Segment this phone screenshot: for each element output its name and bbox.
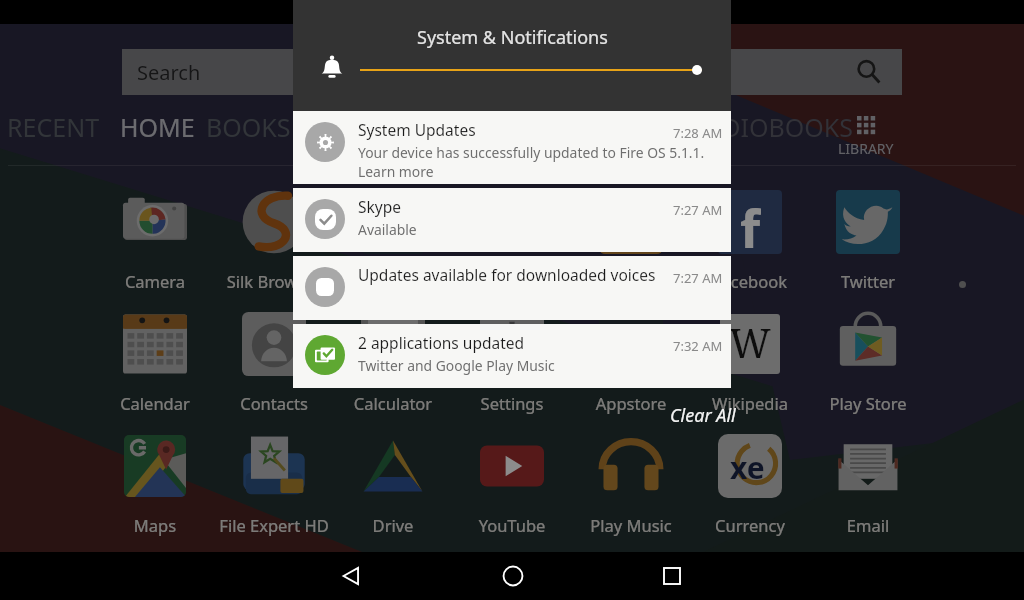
button[interactable]: Email [453,182,571,294]
button[interactable]: Twitter [809,182,927,294]
staticText: 2 applications updated [358,332,525,353]
staticText: f [740,192,761,254]
button[interactable]: System Updates [293,111,731,184]
button[interactable]: YouTube [453,426,571,538]
staticText: xe [730,447,765,488]
button[interactable]: Camera [96,182,214,294]
button[interactable]: Home [493,556,533,596]
staticText: LIBRARY [838,139,894,158]
staticText: Currency [691,514,809,536]
staticText: Play Music [572,514,690,536]
button[interactable]: Clear All [662,398,744,433]
staticText: Your device has successfully updated to … [358,143,705,162]
button[interactable]: Email [809,426,927,538]
staticText: Play Store [809,392,927,414]
button[interactable]: AUDIOBOOKS [688,110,854,144]
staticText: Updates available for downloaded voices [358,264,656,285]
staticText: W [729,315,771,369]
staticText: 7:27 AM [673,269,723,287]
staticText: Twitter and Google Play Music [358,356,555,375]
staticText: 7:28 AM [673,124,723,142]
button[interactable]: HOME [120,110,195,144]
staticText: Calendar [96,392,214,414]
button[interactable]: Settings [453,304,571,416]
staticText: System & Notifications [417,25,608,50]
button[interactable]: Contacts [215,304,333,416]
button[interactable]: Updates available for downloaded voices [293,256,731,320]
button[interactable]: Play Store [809,304,927,416]
staticText: File Expert HD [215,514,333,536]
staticText: Silk Browser [215,270,333,292]
staticText: Clear All [670,403,736,428]
staticText: 7:27 AM [673,201,723,219]
button[interactable]: Volume [360,61,702,79]
staticText: Audible [572,270,690,292]
button[interactable]: Kindle [334,182,452,294]
staticText: Maps [96,514,214,536]
button[interactable]: Back [331,556,371,596]
button[interactable]: Audible [572,182,690,294]
button[interactable]: Maps [96,426,214,538]
button[interactable]: Play Music [572,426,690,538]
button[interactable]: Search [122,49,902,95]
staticText: Settings [453,392,571,414]
button[interactable]: File Expert HD [215,426,333,538]
button[interactable]: f [691,182,809,294]
button[interactable]: Drive [334,426,452,538]
staticText: Learn more [358,162,434,181]
staticText: Appstore [572,392,690,414]
staticText: Drive [334,514,452,536]
staticText: Available [358,220,417,239]
button[interactable]: Appstore [572,304,690,416]
staticText: Contacts [215,392,333,414]
button[interactable]: Recents [652,556,692,596]
staticText: Wikipedia [691,392,809,414]
button[interactable]: 2 applications updated [293,324,731,388]
staticText: YouTube [453,514,571,536]
staticText: Skype [358,196,401,217]
button[interactable]: W [691,304,809,416]
button[interactable]: LIBRARY [823,116,909,158]
button[interactable]: xe [691,426,809,538]
staticText: Facebook [691,270,809,292]
staticText: Kindle [334,270,452,292]
button[interactable]: Calendar [96,304,214,416]
staticText: Email [453,270,571,292]
button[interactable]: Skype [293,188,731,252]
staticText: Email [809,514,927,536]
staticText: Twitter [809,270,927,292]
staticText: Search [137,59,201,86]
staticText: Calculator [334,392,452,414]
staticText: System Updates [358,119,476,140]
button[interactable]: RECENT [7,110,100,144]
button[interactable]: BOOKS [206,110,291,144]
staticText: 7:32 AM [673,337,723,355]
staticText: Camera [96,270,214,292]
button[interactable]: Silk Browser [215,182,333,294]
button[interactable]: Calculator [334,304,452,416]
